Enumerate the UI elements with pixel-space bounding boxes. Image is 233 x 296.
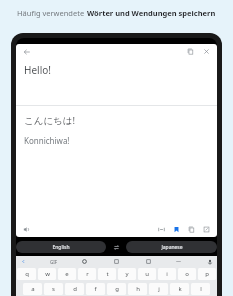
button[interactable]: i (158, 268, 176, 280)
button[interactable]: u (138, 268, 156, 280)
staticText: l (200, 285, 202, 293)
button[interactable]: s (44, 283, 63, 295)
button[interactable]: y (118, 268, 136, 280)
button[interactable]: d (65, 283, 84, 295)
button[interactable]: w (38, 268, 56, 280)
button[interactable]: こんにちは! (16, 106, 217, 146)
staticText: Japanese (161, 244, 183, 251)
staticText: d (73, 285, 77, 293)
staticText: s (52, 285, 55, 293)
staticText: g (115, 285, 119, 293)
button[interactable]: q (17, 268, 36, 280)
staticText: f (94, 285, 97, 293)
staticText: u (145, 270, 149, 278)
button[interactable]: e (58, 268, 76, 280)
staticText: Hello! (24, 63, 51, 77)
button[interactable]: k (170, 283, 189, 295)
button[interactable]: h (128, 283, 147, 295)
button[interactable]: Share (201, 224, 212, 235)
button[interactable]: Swap languages (106, 241, 126, 253)
staticText: h (136, 285, 140, 293)
staticText: こんにちは! (24, 114, 76, 127)
button[interactable]: Emoji (80, 257, 89, 266)
staticText: i (166, 270, 168, 278)
staticText: a (31, 285, 35, 293)
button[interactable]: Clear (201, 46, 212, 57)
staticText: GIF (50, 259, 58, 265)
button[interactable]: Keyboard options (19, 257, 28, 266)
button[interactable]: Hello! (16, 59, 217, 105)
button[interactable]: Copy translation (186, 224, 197, 235)
button[interactable]: Translate (144, 257, 153, 266)
staticText: k (178, 285, 182, 293)
button[interactable]: Back (21, 46, 32, 57)
button[interactable]: Japanese (126, 241, 217, 253)
staticText: t (106, 270, 109, 278)
button[interactable]: r (78, 268, 96, 280)
staticText: y (125, 270, 129, 278)
button[interactable]: Save (171, 224, 182, 235)
staticText: p (205, 270, 209, 278)
button[interactable]: j (149, 283, 168, 295)
staticText: w (45, 270, 50, 278)
staticText: Wörter und Wendungen speichern (87, 8, 216, 18)
button[interactable]: Copy (185, 46, 196, 57)
button[interactable]: p (198, 268, 216, 280)
button[interactable]: o (178, 268, 196, 280)
staticText: r (86, 270, 89, 278)
staticText: — (176, 258, 182, 265)
button[interactable]: f (86, 283, 105, 295)
button[interactable]: English (16, 241, 106, 253)
staticText: j (158, 285, 160, 293)
staticText: Konnichiwa! (24, 135, 70, 146)
button[interactable]: t (98, 268, 116, 280)
staticText: q (25, 270, 29, 278)
button[interactable]: Stickers (112, 257, 121, 266)
staticText: o (185, 270, 189, 278)
button[interactable]: g (107, 283, 126, 295)
button[interactable]: Listen (21, 224, 32, 235)
button[interactable]: l (191, 283, 210, 295)
button[interactable]: Voice input (205, 257, 214, 266)
staticText: e (65, 270, 69, 278)
staticText: Häufig verwendete (17, 8, 87, 18)
button[interactable]: Fullscreen (156, 224, 167, 235)
staticText: English (52, 244, 70, 251)
button[interactable]: a (23, 283, 42, 295)
